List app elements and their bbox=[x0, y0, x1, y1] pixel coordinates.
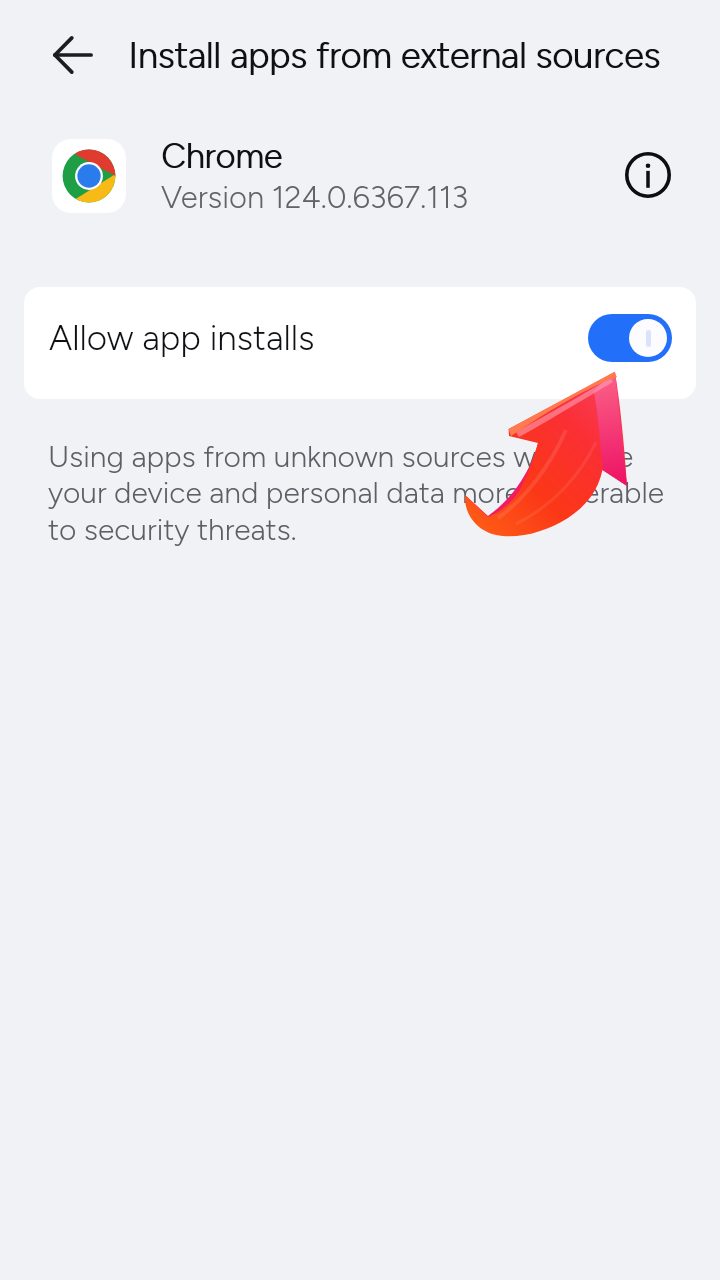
button[interactable]: Allow app installs bbox=[24, 287, 696, 399]
staticText: Allow app installs bbox=[49, 317, 315, 359]
button[interactable]: Info bbox=[620, 147, 676, 203]
button[interactable]: Allow app installs bbox=[588, 314, 672, 362]
staticText: Version 124.0.6367.113 bbox=[161, 179, 469, 216]
staticText: Using apps from unknown sources will mak… bbox=[48, 438, 665, 548]
staticText: Install apps from external sources bbox=[128, 34, 661, 77]
staticText: Install apps from external sources bbox=[129, 34, 662, 77]
staticText: Chrome bbox=[161, 136, 283, 177]
button[interactable]: Back bbox=[49, 31, 96, 78]
staticText: Chrome bbox=[162, 136, 284, 177]
